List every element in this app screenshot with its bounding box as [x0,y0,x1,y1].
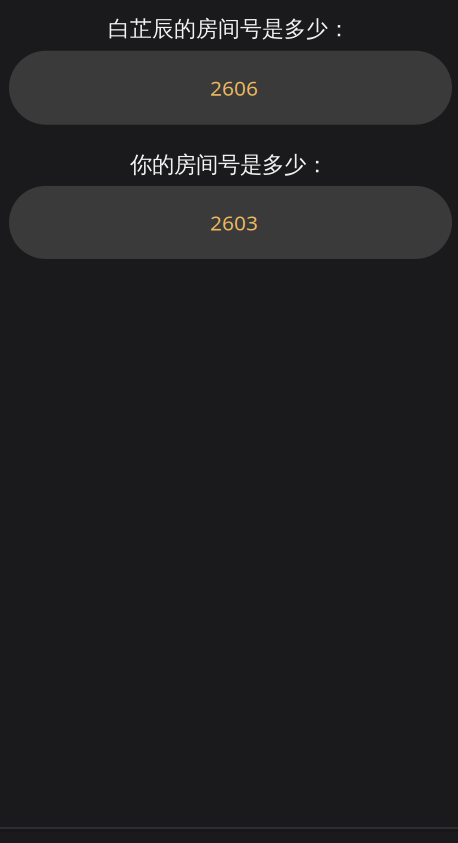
staticText: 2606 [210,73,258,102]
staticText: 你的房间号是多少： [130,151,328,179]
button[interactable]: 2606 [9,51,452,125]
button[interactable]: 2603 [9,186,452,259]
staticText: 白芷辰的房间号是多少： [108,15,350,43]
staticText: 2603 [210,208,258,237]
